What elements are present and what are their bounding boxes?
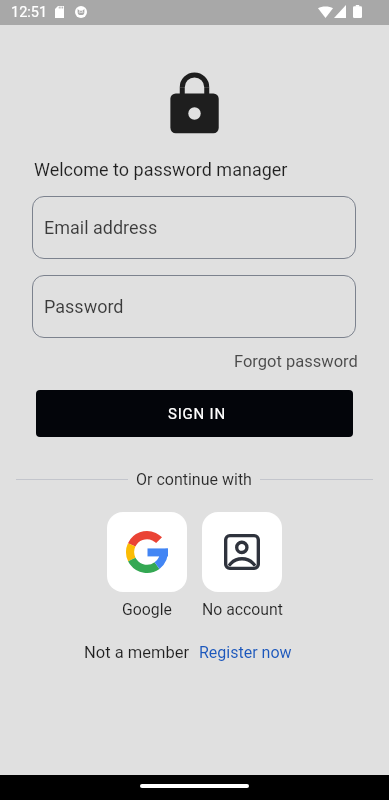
button[interactable]: Forgot password xyxy=(234,352,358,371)
other: Lock xyxy=(169,72,220,134)
button[interactable]: Register now xyxy=(199,643,292,662)
button[interactable]: SIGN IN xyxy=(36,390,353,437)
staticText: Welcome to password manager xyxy=(34,159,288,180)
other: No account xyxy=(224,534,260,570)
button[interactable]: No account xyxy=(202,512,282,592)
staticText: Email address xyxy=(44,217,158,238)
button[interactable] xyxy=(107,512,187,592)
button[interactable]: Password xyxy=(32,275,356,338)
staticText: SIGN IN xyxy=(168,405,227,423)
staticText: Not a member xyxy=(84,643,190,662)
staticText: Password xyxy=(44,296,124,317)
staticText: 12:51 xyxy=(11,4,48,21)
staticText: Google xyxy=(122,600,172,619)
button[interactable]: Email address xyxy=(32,196,356,259)
staticText: Or continue with xyxy=(136,470,252,489)
staticText: Forgot password xyxy=(234,352,358,371)
staticText: No account xyxy=(202,600,283,619)
